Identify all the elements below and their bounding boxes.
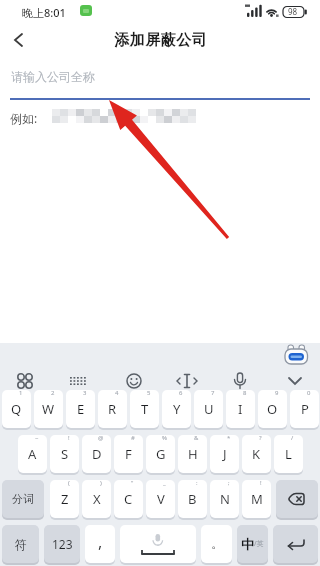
staticText: , [98, 531, 103, 553]
button[interactable]: @ [82, 435, 111, 473]
button[interactable]: ! [242, 480, 271, 518]
staticText: C [124, 490, 133, 508]
button[interactable] [281, 367, 309, 395]
staticText: 98 [288, 6, 298, 17]
staticText: 1 [19, 390, 23, 397]
staticText: @ [98, 435, 104, 442]
button[interactable]: 。 [201, 525, 232, 563]
button[interactable]: 6 [162, 390, 191, 428]
button[interactable]: 2 [34, 390, 63, 428]
staticText: " [131, 480, 134, 487]
button[interactable]: 0 [290, 390, 319, 428]
staticText: ~ [35, 435, 39, 442]
staticText: 分词 [12, 492, 34, 506]
button[interactable]: ? [242, 435, 271, 473]
staticText: ? [259, 435, 262, 442]
staticText: R [108, 400, 117, 418]
staticText: 例如: [10, 110, 38, 126]
button[interactable]: 分词 [2, 480, 44, 518]
staticText: ; [228, 480, 230, 487]
button[interactable]: ; [210, 480, 239, 518]
button[interactable]: 请输入公司全称 [10, 60, 310, 100]
button[interactable]: * [210, 435, 239, 473]
staticText: * [227, 435, 231, 442]
button[interactable]: % [146, 435, 175, 473]
staticText: H [188, 445, 198, 463]
button[interactable]: " [114, 480, 143, 518]
button[interactable]: 7 [194, 390, 223, 428]
button[interactable]: 1 [2, 390, 31, 428]
staticText: G [156, 445, 166, 463]
staticText: V [157, 490, 165, 508]
button[interactable]: 符 [2, 525, 39, 563]
button[interactable]: , [85, 525, 115, 563]
staticText: B [188, 490, 197, 508]
staticText: T [141, 400, 149, 418]
button[interactable]: 4 [98, 390, 127, 428]
button[interactable]: & [178, 435, 207, 473]
button[interactable]: 9 [258, 390, 287, 428]
button[interactable] [285, 345, 308, 365]
staticText: M [251, 490, 263, 508]
button[interactable] [11, 367, 39, 395]
staticText: 8 [243, 390, 247, 397]
staticText: 请输入公司全称 [11, 69, 95, 84]
staticText: % [162, 435, 167, 442]
staticText: K [252, 445, 261, 463]
button[interactable] [226, 367, 254, 395]
staticText: 123 [52, 536, 73, 552]
staticText: 晚上8:01 [22, 5, 66, 20]
staticText: I [238, 400, 243, 418]
staticText: X [93, 490, 101, 508]
button[interactable] [120, 525, 196, 563]
staticText: O [267, 400, 278, 418]
staticText: Q [11, 400, 22, 418]
button[interactable]: ) [82, 480, 111, 518]
button[interactable]: 3 [66, 390, 95, 428]
staticText: 9 [275, 390, 279, 397]
staticText: 符 [15, 537, 27, 552]
staticText: & [194, 435, 199, 442]
staticText: Z [61, 490, 69, 508]
staticText: Y [173, 400, 181, 418]
staticText: U [204, 400, 214, 418]
staticText: : [196, 480, 198, 487]
button[interactable] [120, 367, 148, 395]
button[interactable]: ~ [18, 435, 47, 473]
staticText: ! [68, 435, 70, 442]
staticText: 中 [241, 536, 254, 552]
button[interactable]: _ [146, 480, 175, 518]
button[interactable] [64, 367, 92, 395]
staticText: 3 [83, 390, 87, 397]
button[interactable]: ! [50, 435, 79, 473]
staticText: 6 [179, 390, 183, 397]
staticText: A [28, 445, 37, 463]
button[interactable] [276, 480, 318, 518]
button[interactable]: / [274, 435, 303, 473]
staticText: 5 [147, 390, 151, 397]
staticText: 2 [51, 390, 55, 397]
staticText: _ [163, 480, 166, 487]
button[interactable]: : [178, 480, 207, 518]
staticText: ) [100, 480, 102, 487]
button[interactable]: 中 [237, 525, 268, 563]
button[interactable]: 5 [130, 390, 159, 428]
button[interactable] [273, 525, 318, 563]
staticText: 4 [115, 390, 119, 397]
button[interactable] [173, 367, 201, 395]
button[interactable]: # [114, 435, 143, 473]
button[interactable]: 8 [226, 390, 255, 428]
staticText: W [42, 400, 55, 418]
button[interactable]: ( [50, 480, 79, 518]
staticText: P [301, 400, 309, 418]
staticText: / [291, 435, 294, 442]
button[interactable]: 123 [44, 525, 80, 563]
staticText: 。 [211, 535, 224, 551]
button[interactable] [8, 24, 40, 56]
staticText: S [61, 445, 69, 463]
staticText: J [223, 445, 227, 463]
staticText: ( [68, 480, 70, 487]
staticText: 7 [211, 390, 215, 397]
staticText: /英 [254, 539, 264, 549]
staticText: ! [260, 480, 262, 487]
